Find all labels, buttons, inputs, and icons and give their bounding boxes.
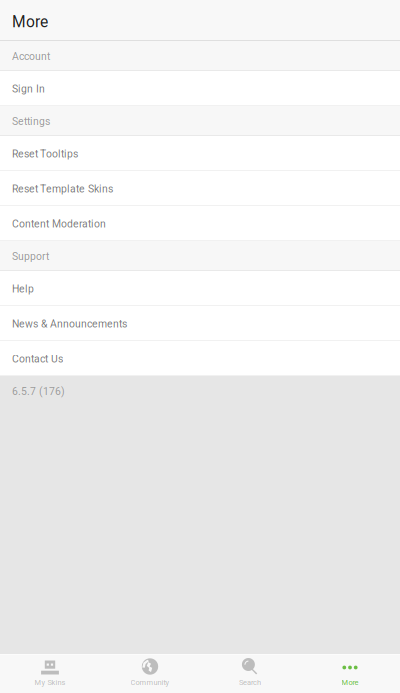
staticText: Contact Us	[12, 353, 63, 365]
staticText: Reset Template Skins	[12, 183, 113, 195]
button[interactable]: Reset Tooltips	[0, 136, 400, 171]
staticText: My Skins	[34, 678, 65, 687]
staticText: More	[341, 678, 358, 687]
staticText: Community	[130, 678, 169, 687]
button[interactable]: Reset Template Skins	[0, 171, 400, 206]
staticText: Help	[12, 283, 34, 295]
button[interactable]: My Skins	[0, 654, 100, 693]
button[interactable]: Sign In	[0, 71, 400, 106]
button[interactable]: Contact Us	[0, 341, 400, 376]
staticText: More	[12, 13, 48, 31]
staticText: Content Moderation	[12, 218, 106, 230]
button[interactable]: Search	[200, 654, 300, 693]
button[interactable]: Content Moderation	[0, 206, 400, 241]
staticText: Account	[12, 50, 50, 63]
staticText: Search	[239, 678, 261, 687]
staticText: News & Announcements	[12, 318, 127, 330]
button[interactable]: More	[300, 654, 400, 693]
staticText: Sign In	[12, 83, 45, 95]
button[interactable]: News & Announcements	[0, 306, 400, 341]
staticText: Reset Tooltips	[12, 148, 78, 160]
button[interactable]: Community	[100, 654, 200, 693]
staticText: Settings	[12, 115, 50, 128]
staticText: Support	[12, 250, 49, 263]
button[interactable]: Help	[0, 271, 400, 306]
staticText: 6.5.7 (176)	[12, 385, 65, 398]
